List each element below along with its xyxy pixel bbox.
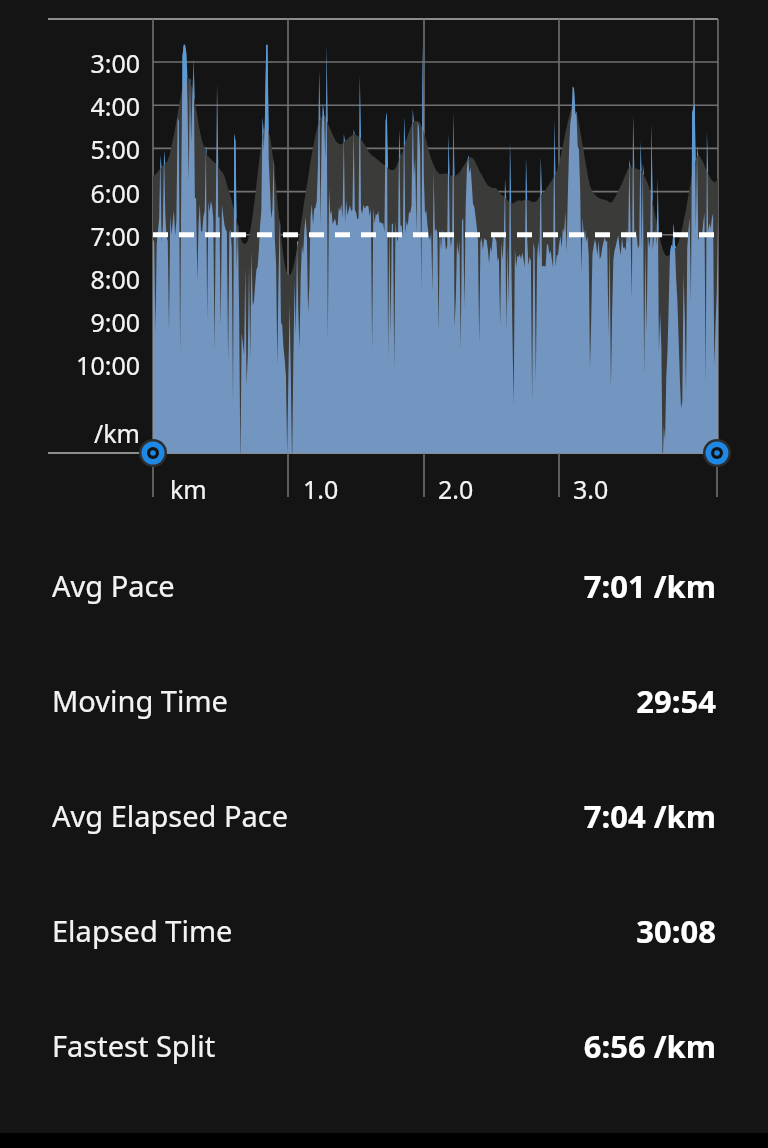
staticText: 7:00 bbox=[0, 219, 140, 253]
button[interactable]: Moving Time bbox=[0, 643, 768, 758]
staticText: km bbox=[170, 472, 207, 506]
staticText: Moving Time bbox=[52, 681, 228, 720]
staticText: 7:04 /km bbox=[583, 795, 716, 837]
button[interactable]: Fastest Split bbox=[0, 988, 768, 1103]
staticText: 3.0 bbox=[573, 472, 609, 506]
staticText: /km bbox=[0, 416, 140, 450]
staticText: Elapsed Time bbox=[52, 911, 233, 950]
staticText: 4:00 bbox=[0, 89, 140, 123]
staticText: 9:00 bbox=[0, 305, 140, 339]
staticText: 10:00 bbox=[0, 348, 140, 382]
staticText: 3:00 bbox=[0, 46, 140, 80]
staticText: 6:56 /km bbox=[583, 1025, 716, 1067]
staticText: 8:00 bbox=[0, 262, 140, 296]
staticText: 30:08 bbox=[636, 910, 716, 952]
button[interactable]: Avg Pace bbox=[0, 528, 768, 643]
button[interactable]: Avg Elapsed Pace bbox=[0, 758, 768, 873]
button[interactable]: Elapsed Time bbox=[0, 873, 768, 988]
staticText: 5:00 bbox=[0, 132, 140, 166]
other: Pace over distance chart bbox=[0, 0, 768, 520]
staticText: Avg Elapsed Pace bbox=[52, 796, 289, 835]
staticText: 6:00 bbox=[0, 176, 140, 210]
staticText: 1.0 bbox=[303, 472, 339, 506]
staticText: 2.0 bbox=[438, 472, 474, 506]
staticText: 7:01 /km bbox=[583, 565, 716, 607]
staticText: 29:54 bbox=[636, 680, 716, 722]
staticText: Avg Pace bbox=[52, 566, 175, 605]
staticText: Fastest Split bbox=[52, 1026, 216, 1065]
